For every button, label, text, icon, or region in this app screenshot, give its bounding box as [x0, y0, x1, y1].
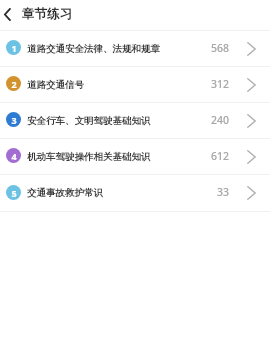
staticText: 4: [11, 150, 17, 162]
button[interactable]: 4: [0, 139, 270, 174]
staticText: 568: [199, 41, 229, 55]
staticText: 道路交通信号: [27, 79, 199, 91]
staticText: 机动车驾驶操作相关基础知识: [27, 151, 199, 163]
button[interactable]: 5: [0, 175, 270, 211]
staticText: 5: [11, 187, 17, 199]
staticText: 1: [11, 42, 17, 54]
staticText: 2: [11, 78, 17, 90]
button[interactable]: 1: [0, 31, 270, 66]
button[interactable]: 2: [0, 67, 270, 102]
staticText: 312: [199, 77, 229, 91]
staticText: 章节练习: [22, 6, 72, 22]
button[interactable]: 3: [0, 103, 270, 138]
staticText: 33: [199, 185, 229, 199]
staticText: 240: [199, 113, 229, 127]
staticText: 3: [11, 114, 17, 126]
staticText: 安全行车、文明驾驶基础知识: [27, 115, 199, 127]
staticText: 道路交通安全法律、法规和规章: [27, 43, 199, 55]
staticText: 612: [199, 149, 229, 163]
staticText: 交通事故救护常识: [27, 187, 199, 199]
button[interactable]: Back: [0, 0, 18, 30]
